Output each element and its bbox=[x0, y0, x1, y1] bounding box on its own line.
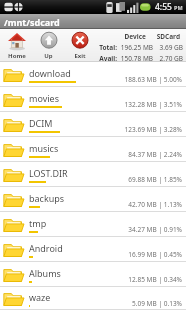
staticText: 2.70 GB bbox=[159, 54, 183, 62]
staticText: download bbox=[29, 67, 71, 79]
staticText: 42.70 MB | 1.13% bbox=[128, 200, 182, 209]
staticText: PM bbox=[174, 4, 183, 11]
button[interactable]: DCIM bbox=[0, 112, 186, 137]
other: Up bbox=[39, 31, 59, 51]
button[interactable]: Exit bbox=[64, 29, 95, 62]
button[interactable]: waze bbox=[0, 287, 186, 310]
staticText: 132.28 MB | 3.51% bbox=[124, 100, 182, 109]
button[interactable]: download bbox=[0, 62, 186, 87]
staticText: Up bbox=[44, 52, 53, 60]
button[interactable]: Android bbox=[0, 237, 186, 262]
staticText: 4:55 bbox=[155, 1, 172, 13]
staticText: waze bbox=[29, 291, 51, 303]
staticText: backups bbox=[29, 192, 65, 204]
staticText: Avail: bbox=[99, 54, 117, 62]
staticText: 16.99 MB | 0.45% bbox=[128, 250, 182, 259]
other: Home bbox=[7, 31, 27, 51]
staticText: Home bbox=[8, 52, 26, 60]
staticText: 12.85 MB | 0.34% bbox=[128, 275, 182, 284]
button[interactable]: Albums bbox=[0, 262, 186, 287]
button[interactable]: Up bbox=[33, 29, 64, 62]
staticText: LOST.DIR bbox=[29, 167, 68, 179]
staticText: tmp bbox=[29, 217, 47, 229]
staticText: Exit bbox=[74, 52, 86, 60]
button[interactable]: musics bbox=[0, 137, 186, 162]
button[interactable]: backups bbox=[0, 187, 186, 212]
staticText: Device bbox=[124, 32, 146, 41]
staticText: DCIM bbox=[29, 117, 53, 129]
staticText: 5.09 MB | 0.13% bbox=[132, 299, 182, 308]
staticText: Albums bbox=[29, 267, 61, 279]
staticText: /mnt/sdcard bbox=[4, 16, 60, 28]
button[interactable]: Home bbox=[0, 29, 33, 62]
staticText: movies bbox=[29, 92, 59, 104]
staticText: Android bbox=[29, 242, 63, 254]
other: Exit bbox=[70, 31, 90, 51]
staticText: 3.69 GB bbox=[159, 43, 183, 52]
staticText: 69.88 MB | 1.85% bbox=[128, 175, 182, 184]
button[interactable]: tmp bbox=[0, 212, 186, 237]
staticText: 123.69 MB | 3.28% bbox=[124, 125, 182, 134]
staticText: 188.63 MB | 5.00% bbox=[124, 75, 182, 84]
button[interactable]: movies bbox=[0, 87, 186, 112]
staticText: Total: bbox=[99, 43, 117, 52]
staticText: 196.25 MB bbox=[120, 43, 153, 52]
staticText: SDCard bbox=[156, 32, 180, 41]
button[interactable]: LOST.DIR bbox=[0, 162, 186, 187]
staticText: 150.78 MB bbox=[120, 54, 153, 62]
staticText: 84.37 MB | 2.24% bbox=[128, 150, 182, 159]
staticText: 34.27 MB | 0.91% bbox=[128, 225, 182, 234]
staticText: musics bbox=[29, 142, 59, 154]
